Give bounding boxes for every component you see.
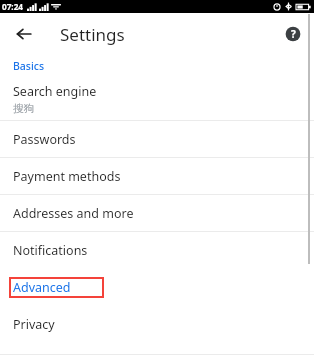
button[interactable]: Passwords	[0, 121, 314, 157]
button[interactable]: Search engine	[0, 77, 314, 120]
staticText: Search engine	[13, 83, 97, 100]
staticText: ?	[291, 27, 296, 41]
button[interactable]: Addresses and more	[0, 195, 314, 231]
staticText: Payment methods	[13, 168, 121, 185]
staticText: Notifications	[13, 242, 88, 259]
staticText: Privacy	[13, 316, 55, 333]
button[interactable]: Back	[12, 22, 36, 46]
button[interactable]: Help	[282, 23, 304, 45]
button[interactable]: Notifications	[0, 232, 314, 268]
staticText: Basics	[13, 59, 45, 73]
button[interactable]: Advanced	[9, 277, 104, 298]
staticText: Advanced	[13, 279, 71, 296]
staticText: 搜狗	[13, 102, 34, 115]
staticText: Addresses and more	[13, 205, 134, 222]
button[interactable]: Privacy	[0, 306, 314, 342]
staticText: Settings	[60, 23, 125, 46]
button[interactable]: Payment methods	[0, 158, 314, 194]
staticText: 07:24	[2, 1, 24, 12]
staticText: Passwords	[13, 131, 76, 148]
